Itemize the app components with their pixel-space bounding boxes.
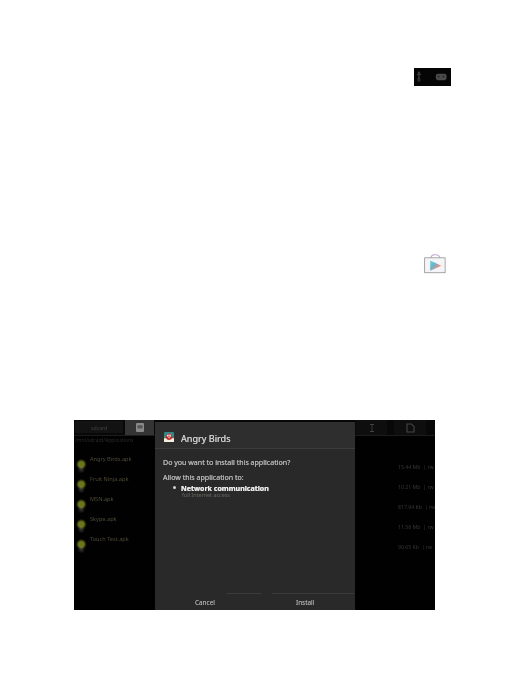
staticText: Touch Test.apk	[90, 535, 129, 543]
staticText: Angry Birds	[181, 432, 231, 444]
staticText: sdcard	[91, 424, 108, 431]
staticText: Do you want to install this application?	[163, 457, 291, 467]
button[interactable]: MSN.apk	[74, 495, 435, 515]
button[interactable]: Install	[256, 594, 355, 610]
staticText: Cancel	[195, 598, 215, 607]
staticText: Fruit Ninja.apk	[90, 475, 129, 483]
staticText: full Internet access	[182, 491, 230, 498]
staticText: MSN.apk	[90, 495, 114, 503]
button[interactable]: New document	[394, 420, 426, 435]
staticText: 10.21 Mb | rw	[398, 483, 434, 490]
button[interactable]: Device storage	[125, 420, 154, 435]
staticText: 11.58 Mb | rw	[398, 523, 434, 530]
button[interactable]: Google Play	[424, 253, 446, 274]
button[interactable]: Angry Birds.apk	[74, 455, 435, 475]
button[interactable]: Skype.apk	[74, 515, 435, 535]
staticText: 90.65 Kb | rw	[398, 543, 433, 550]
button[interactable]: Sort	[356, 420, 387, 435]
staticText: 817.94 Kb | rw	[398, 503, 436, 510]
staticText: /mnt/sdcard/Applications	[75, 437, 134, 444]
staticText: 15.44 Mb | rw	[398, 463, 434, 470]
button[interactable]: Touch Test.apk	[74, 535, 435, 555]
staticText: Network communication	[181, 483, 269, 493]
button[interactable]: Status icons	[414, 68, 451, 86]
staticText: Allow this application to:	[163, 472, 244, 482]
button[interactable]: sdcard	[75, 421, 123, 433]
staticText: Install	[296, 598, 315, 607]
staticText: Angry Birds.apk	[90, 455, 132, 463]
staticText: Skype.apk	[90, 515, 117, 523]
button[interactable]: Fruit Ninja.apk	[74, 475, 435, 495]
button[interactable]: Cancel	[155, 594, 254, 610]
